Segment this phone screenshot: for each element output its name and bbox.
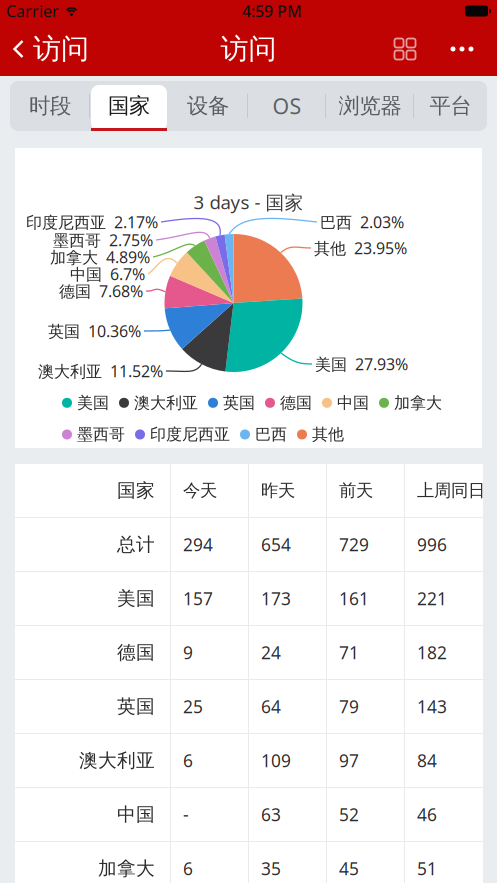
button[interactable]: 浏览器 [326,81,414,131]
staticText: 45 [339,857,359,880]
staticText: 设备 [187,93,229,119]
staticText: 国家 [108,93,150,119]
staticText: 996 [417,533,447,556]
staticText: 德国 [280,393,312,413]
staticText: 79 [339,695,359,718]
staticText: 访问 [33,32,89,66]
button[interactable]: 平台 [414,81,487,131]
staticText: 澳大利亚 [134,393,198,413]
staticText: 德国 7.68% [59,280,143,302]
staticText: 中国 [117,803,155,826]
staticText: 访问 [220,32,276,66]
staticText: 英国 [117,695,155,718]
staticText: 221 [417,587,447,610]
button[interactable]: 访问 [12,22,98,76]
staticText: 加拿大 4.89% [50,246,150,268]
staticText: 109 [261,749,291,772]
staticText: 德国 [117,641,155,664]
staticText: 美国 [117,587,155,610]
staticText: 84 [417,749,437,772]
button[interactable]: 设备 [168,81,248,131]
staticText: 6 [183,749,193,772]
staticText: 墨西哥 2.75% [53,229,153,251]
staticText: 182 [417,641,447,664]
staticText: 24 [261,641,281,664]
staticText: 97 [339,749,359,772]
staticText: 294 [183,533,213,556]
staticText: 巴西 2.03% [320,211,404,233]
staticText: 25 [183,695,203,718]
staticText: 美国 [77,393,109,413]
staticText: 71 [339,641,359,664]
staticText: 总计 [117,533,155,556]
staticText: - [183,803,189,826]
staticText: 浏览器 [338,93,401,119]
staticText: 加拿大 [394,393,442,413]
staticText: 墨西哥 [77,425,125,444]
staticText: 印度尼西亚 [150,425,230,444]
staticText: Carrier [6,0,59,22]
staticText: 上周同日 [417,480,485,501]
staticText: 46 [417,803,437,826]
button[interactable]: More options [440,22,484,76]
staticText: 161 [339,587,369,610]
staticText: 4:59 PM [242,0,302,22]
staticText: 其他 23.95% [314,237,407,259]
staticText: 加拿大 [98,857,155,880]
staticText: 英国 10.36% [48,320,141,342]
button[interactable]: 时段 [10,81,90,131]
staticText: 中国 6.7% [70,263,145,285]
staticText: 64 [261,695,281,718]
staticText: 今天 [183,480,217,501]
staticText: 157 [183,587,213,610]
button[interactable]: 国家 [90,81,168,131]
staticText: 3 days - 国家 [193,190,303,214]
staticText: 其他 [312,425,344,444]
staticText: 中国 [337,393,369,413]
staticText: 729 [339,533,369,556]
staticText: 英国 [223,393,255,413]
staticText: 时段 [29,93,71,119]
staticText: 印度尼西亚 2.17% [26,211,158,233]
button[interactable]: Grid view [383,22,427,76]
staticText: 澳大利亚 11.52% [38,360,163,382]
staticText: 昨天 [261,480,295,501]
staticText: 澳大利亚 [79,749,155,772]
staticText: 9 [183,641,193,664]
staticText: 52 [339,803,359,826]
staticText: 前天 [339,480,373,501]
staticText: 63 [261,803,281,826]
button[interactable]: OS [248,81,326,131]
staticText: 143 [417,695,447,718]
staticText: 国家 [117,479,155,502]
staticText: OS [272,92,301,120]
staticText: 巴西 [255,425,287,444]
staticText: 6 [183,857,193,880]
staticText: 51 [417,857,437,880]
staticText: 美国 27.93% [315,353,408,375]
staticText: 平台 [429,93,471,119]
staticText: 173 [261,587,291,610]
staticText: 35 [261,857,281,880]
staticText: 654 [261,533,291,556]
